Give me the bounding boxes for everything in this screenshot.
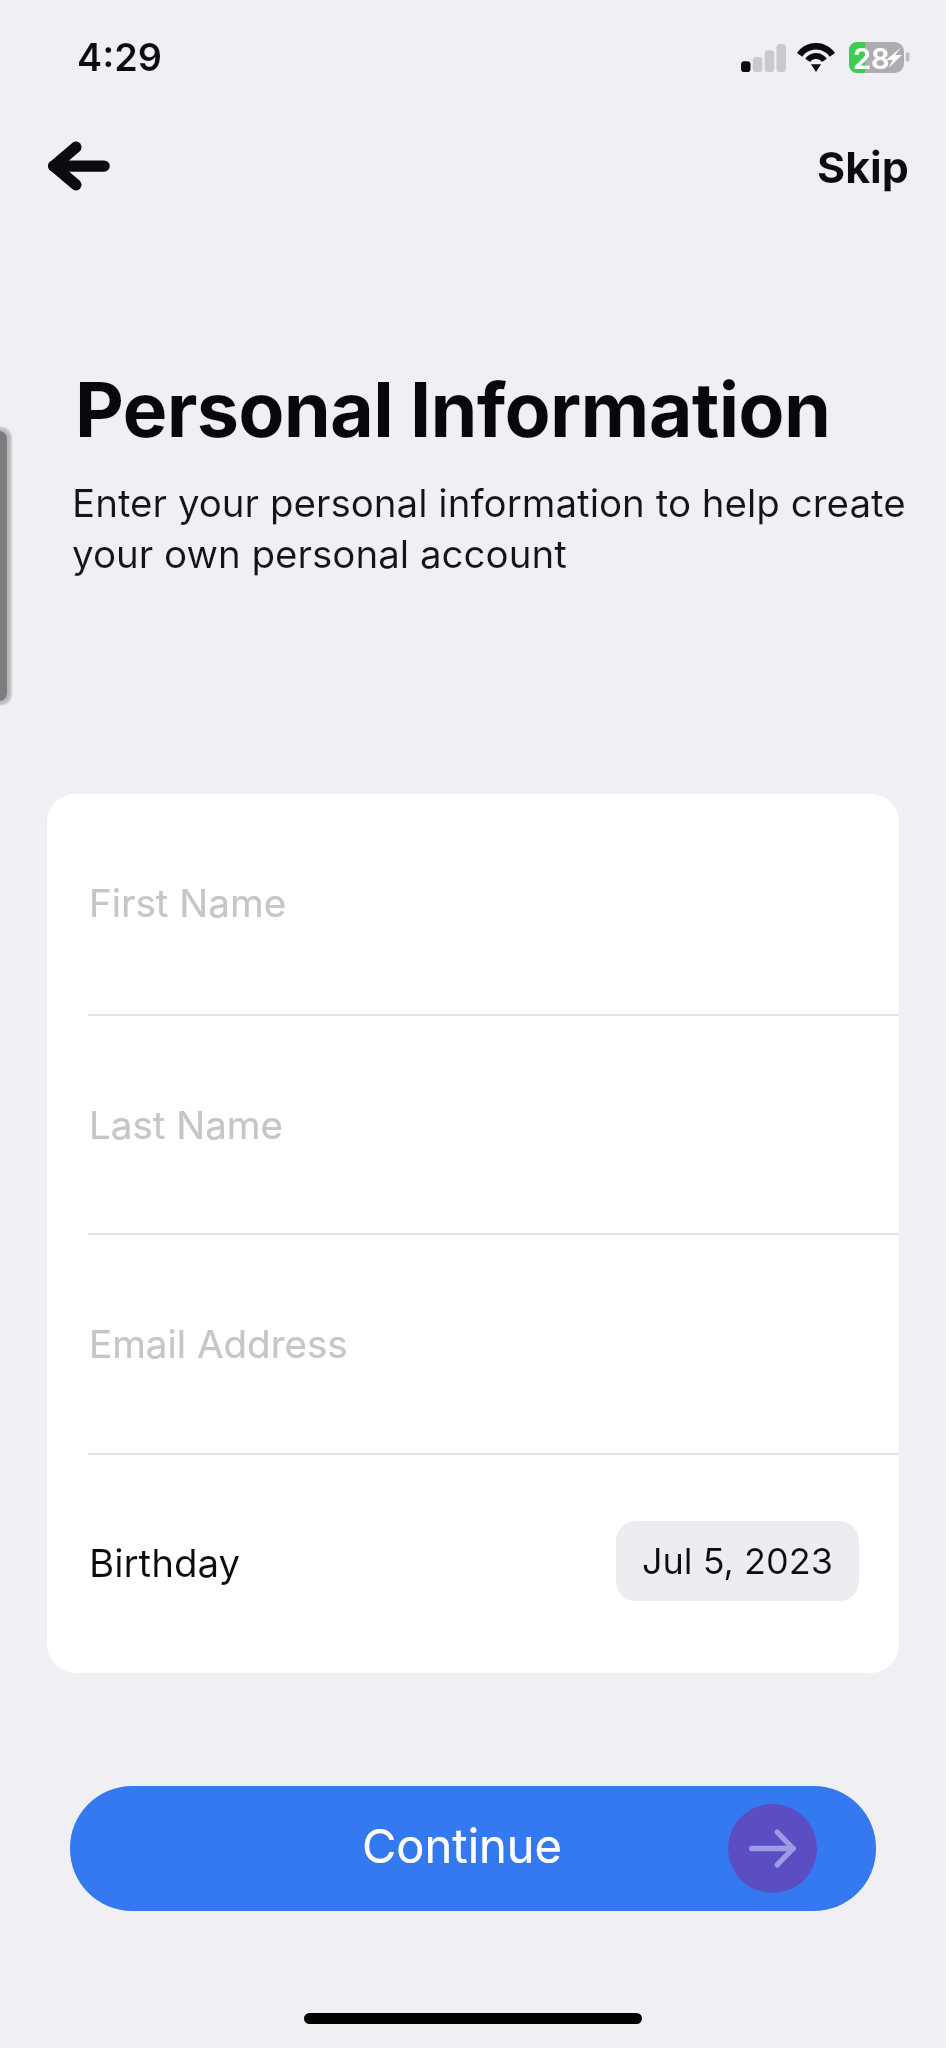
staticText: Birthday [89, 1540, 241, 1587]
staticText: First Name [89, 880, 287, 927]
button[interactable]: Back [29, 116, 129, 216]
staticText: Skip [817, 141, 909, 193]
button[interactable]: Email Address [47, 1235, 899, 1455]
staticText: Jul 5, 2023 [642, 1539, 833, 1583]
button[interactable]: Jul 5, 2023 [616, 1521, 859, 1601]
staticText: Email Address [89, 1321, 348, 1368]
staticText: 28 [853, 41, 890, 76]
staticText: Enter your personal information to help … [72, 476, 923, 578]
staticText: Personal Information [75, 364, 831, 455]
button[interactable]: Continue [728, 1804, 817, 1893]
button[interactable]: Skip [788, 113, 938, 221]
staticText: 4:29 [77, 34, 162, 80]
staticText: Continue [362, 1817, 563, 1874]
button[interactable]: Continue [70, 1786, 876, 1911]
staticText: Last Name [89, 1102, 283, 1149]
button[interactable]: Last Name [47, 1016, 899, 1235]
button[interactable]: First Name [47, 794, 899, 1016]
